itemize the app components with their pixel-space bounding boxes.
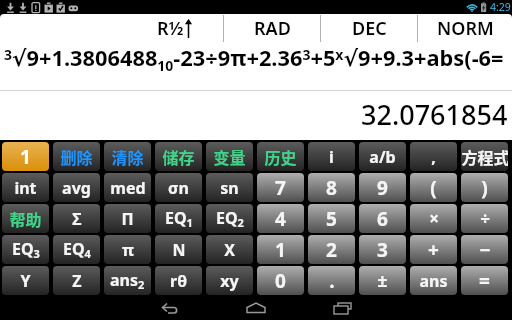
staticText: xy	[220, 270, 239, 292]
button[interactable]: 0	[257, 266, 304, 295]
button[interactable]: DEC	[321, 14, 417, 42]
button[interactable]: 1	[2, 142, 49, 171]
staticText: RAD	[254, 16, 291, 41]
button[interactable]: +	[410, 235, 457, 264]
button[interactable]: xy	[206, 266, 253, 295]
button[interactable]: σn	[155, 173, 202, 202]
button[interactable]: NORM	[418, 14, 512, 42]
staticText: Π	[121, 208, 134, 230]
button[interactable]: 4	[257, 204, 304, 233]
staticText: ÷	[480, 207, 490, 230]
button[interactable]: Back	[140, 296, 200, 320]
staticText: 3	[377, 237, 388, 263]
staticText: π	[122, 239, 134, 261]
button[interactable]: N	[155, 235, 202, 264]
button[interactable]: 帮助	[2, 204, 49, 233]
button[interactable]: Recents	[313, 296, 373, 320]
button[interactable]: )	[461, 173, 508, 202]
staticText: ×	[429, 207, 439, 230]
staticText: 4:29	[490, 0, 511, 14]
staticText: EQ4	[63, 238, 91, 261]
button[interactable]: 8	[308, 173, 355, 202]
button[interactable]: ÷	[461, 204, 508, 233]
staticText: )	[481, 175, 488, 201]
button[interactable]: Y	[2, 266, 49, 295]
button[interactable]: Π	[104, 204, 151, 233]
button[interactable]: ×	[410, 204, 457, 233]
staticText: 32.0761854	[361, 96, 508, 133]
button[interactable]: Σ	[53, 204, 100, 233]
button[interactable]: R½	[127, 14, 223, 42]
button[interactable]: =	[461, 266, 508, 295]
staticText: DEC	[352, 16, 387, 41]
button[interactable]: −	[461, 235, 508, 264]
staticText: 4	[275, 206, 286, 232]
staticText: Σ	[72, 208, 82, 230]
staticText: 8	[326, 175, 337, 201]
button[interactable]: 6	[359, 204, 406, 233]
staticText: avg	[62, 177, 91, 199]
button[interactable]: 3	[359, 235, 406, 264]
button[interactable]: RAD	[224, 14, 320, 42]
staticText: .	[329, 268, 335, 294]
staticText: 9	[377, 175, 388, 201]
staticText: 清除	[111, 145, 144, 168]
button[interactable]: 方程式	[461, 142, 508, 171]
button[interactable]: ,	[410, 142, 457, 171]
button[interactable]: int	[2, 173, 49, 202]
button[interactable]: 删除	[53, 142, 100, 171]
button[interactable]: Home	[226, 296, 286, 320]
staticText: Y	[20, 270, 31, 292]
button[interactable]: a/b	[359, 142, 406, 171]
button[interactable]: (	[410, 173, 457, 202]
button[interactable]: sn	[206, 173, 253, 202]
button[interactable]: avg	[53, 173, 100, 202]
staticText: med	[110, 177, 146, 199]
staticText: 删除	[60, 145, 93, 168]
staticText: 变量	[213, 145, 246, 168]
staticText: Z	[72, 270, 82, 292]
staticText: X	[224, 239, 235, 261]
button[interactable]: Z	[53, 266, 100, 295]
staticText: ±	[377, 268, 388, 293]
staticText: R½	[157, 16, 184, 41]
staticText: 1	[20, 144, 31, 170]
staticText: 1	[275, 237, 286, 263]
button[interactable]: EQ2	[206, 204, 253, 233]
staticText: 储存	[162, 145, 195, 168]
staticText: 0	[275, 268, 286, 294]
button[interactable]: 清除	[104, 142, 151, 171]
staticText: =	[479, 268, 490, 294]
button[interactable]: EQ3	[2, 235, 49, 264]
staticText: 帮助	[9, 207, 42, 230]
button[interactable]: rθ	[155, 266, 202, 295]
button[interactable]: 历史	[257, 142, 304, 171]
button[interactable]: ans	[410, 266, 457, 295]
button[interactable]: ±	[359, 266, 406, 295]
button[interactable]: X	[206, 235, 253, 264]
staticText: ans	[419, 270, 448, 292]
staticText: rθ	[170, 270, 187, 292]
button[interactable]: EQ1	[155, 204, 202, 233]
staticText: EQ3	[12, 238, 40, 261]
staticText: int	[14, 177, 37, 199]
button[interactable]: ans2	[104, 266, 151, 295]
button[interactable]: i	[308, 142, 355, 171]
staticText: (	[430, 175, 437, 201]
button[interactable]: π	[104, 235, 151, 264]
button[interactable]: EQ4	[53, 235, 100, 264]
button[interactable]: 2	[308, 235, 355, 264]
staticText: 7	[275, 175, 286, 201]
staticText: i	[329, 146, 334, 168]
staticText: +	[428, 237, 439, 263]
button[interactable]: 变量	[206, 142, 253, 171]
button[interactable]: 1	[257, 235, 304, 264]
button[interactable]: 储存	[155, 142, 202, 171]
button[interactable]: .	[308, 266, 355, 295]
button[interactable]: 7	[257, 173, 304, 202]
staticText: 3√9+1.380648810-23÷9π+2.363+5x√9+9.3+abs…	[4, 43, 504, 75]
button[interactable]: 5	[308, 204, 355, 233]
button[interactable]: med	[104, 173, 151, 202]
staticText: N	[172, 239, 186, 261]
button[interactable]: 9	[359, 173, 406, 202]
